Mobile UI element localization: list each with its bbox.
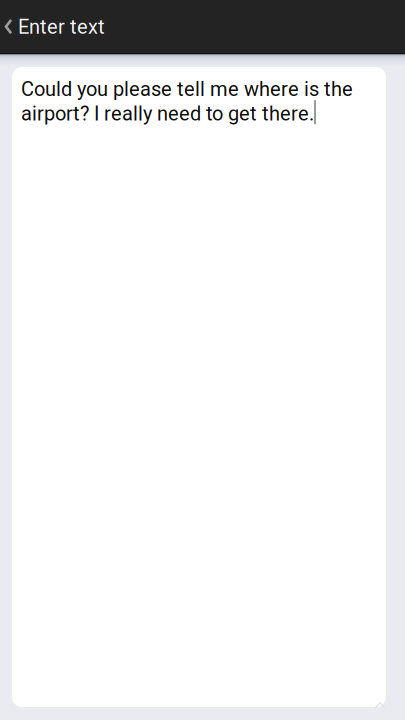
staticText: airport? I really need to get there. — [21, 100, 314, 124]
button[interactable]: Enter text — [0, 0, 117, 53]
staticText: Could you please tell me where is the ai… — [21, 77, 353, 126]
staticText: Enter text — [18, 15, 105, 39]
